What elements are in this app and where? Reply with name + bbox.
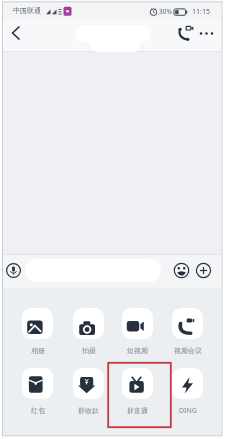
staticText: 视频会议 (174, 346, 202, 355)
button[interactable] (5, 262, 22, 279)
button[interactable] (196, 24, 216, 44)
button[interactable] (172, 368, 203, 399)
button[interactable] (73, 368, 104, 399)
staticText: 群直播 (127, 406, 148, 415)
button[interactable] (122, 308, 153, 339)
staticText: 红包 (31, 406, 45, 415)
staticText: 中国联通 (13, 6, 41, 15)
button[interactable] (172, 308, 203, 339)
staticText: 群收款 (78, 406, 99, 415)
staticText: DING (179, 406, 197, 416)
button[interactable] (22, 368, 53, 399)
button[interactable] (122, 368, 153, 399)
staticText: 相册 (31, 346, 45, 355)
staticText: 短视频 (127, 346, 148, 355)
button[interactable] (195, 262, 212, 279)
button[interactable] (6, 22, 26, 42)
staticText: 拍摄 (82, 346, 96, 355)
button[interactable] (22, 308, 53, 339)
button[interactable] (73, 308, 104, 339)
button[interactable] (173, 262, 190, 279)
button[interactable] (174, 23, 196, 45)
staticText: 11:15 (192, 7, 210, 17)
staticText: 30% (159, 7, 172, 16)
